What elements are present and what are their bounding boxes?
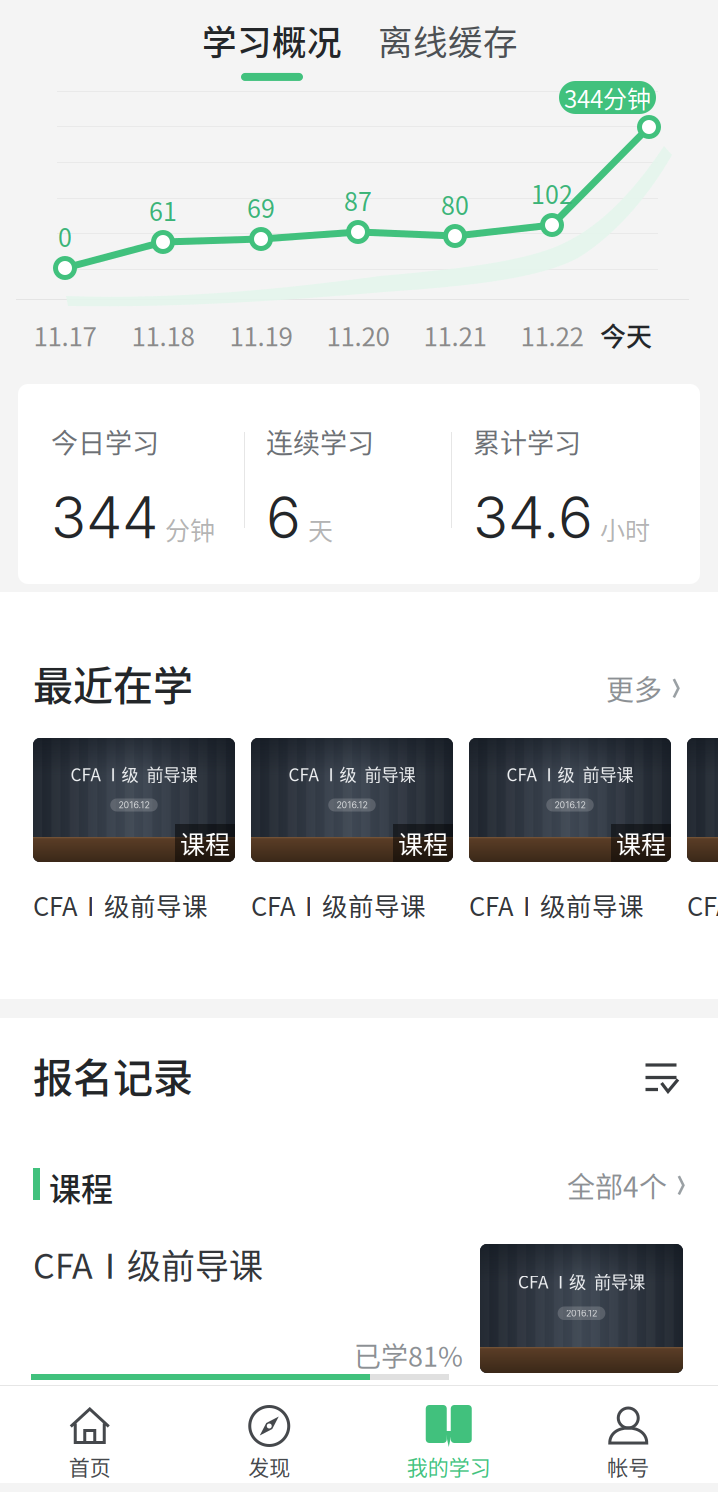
staticText: 87 <box>344 182 372 218</box>
staticText: 课程 <box>49 1164 113 1210</box>
staticText: 我的学习 <box>407 1451 491 1481</box>
staticText: 0 <box>58 218 72 254</box>
staticText: CFA Ⅰ级 前导课 <box>70 761 197 786</box>
staticText: 分钟 <box>165 511 215 547</box>
button[interactable]: CFA Ⅰ级 前导课 <box>469 738 671 910</box>
button[interactable]: 发现 <box>179 1386 359 1483</box>
staticText: 61 <box>149 192 177 228</box>
staticText: 69 <box>247 189 275 225</box>
button[interactable]: CFAⅠ级前导课 <box>0 1222 718 1372</box>
button[interactable]: 筛选 <box>644 1063 680 1093</box>
staticText: CFA Ⅰ级 前导课 <box>506 761 633 786</box>
staticText: CFA Ⅰ级 前导课 <box>518 1269 645 1294</box>
staticText: 6 <box>266 482 301 552</box>
staticText: CFAⅠ级前导课 <box>251 886 426 923</box>
button[interactable]: CFA Ⅰ级 前导课 <box>33 738 235 910</box>
staticText: 11.20 <box>326 316 389 354</box>
staticText: 2016.12 <box>566 1308 597 1319</box>
staticText: 今天 <box>600 316 652 354</box>
staticText: 天 <box>308 511 333 547</box>
button[interactable]: 我的学习 <box>359 1386 538 1483</box>
staticText: 课程 <box>616 825 666 861</box>
staticText: 首页 <box>69 1451 111 1481</box>
staticText: CFAⅠ级前导课 <box>469 886 644 923</box>
staticText: 11.19 <box>229 316 292 354</box>
button[interactable]: 学习概况 <box>192 15 352 85</box>
button[interactable]: CFA Ⅰ级 前导课 <box>251 738 453 910</box>
staticText: 全部4个 <box>567 1165 667 1205</box>
staticText: 帐号 <box>607 1451 649 1481</box>
staticText: 11.18 <box>131 316 194 354</box>
staticText: 发现 <box>248 1451 290 1481</box>
staticText: 更多 <box>606 668 662 708</box>
staticText: 累计学习 <box>473 422 581 461</box>
staticText: 小时 <box>600 511 650 547</box>
staticText: 离线缓存 <box>378 15 518 65</box>
staticText: 课程 <box>398 825 448 861</box>
button[interactable]: 全部4个 <box>567 1165 686 1189</box>
button[interactable]: 首页 <box>0 1386 179 1483</box>
button[interactable]: 更多 <box>606 668 681 692</box>
staticText: 11.22 <box>520 316 583 354</box>
button[interactable]: 帐号 <box>538 1386 718 1483</box>
staticText: 2016.12 <box>118 800 149 810</box>
staticText: 2016.12 <box>336 800 367 810</box>
staticText: 今日学习 <box>51 422 159 461</box>
staticText: 报名记录 <box>33 1046 193 1104</box>
button[interactable]: CFA Ⅰ级 前导课 <box>687 738 718 910</box>
staticText: 2016.12 <box>554 800 585 810</box>
staticText: 80 <box>441 186 469 222</box>
staticText: 连续学习 <box>266 422 374 461</box>
staticText: CFAⅠ级前导课 <box>33 886 208 923</box>
button[interactable]: 离线缓存 <box>368 15 528 85</box>
staticText: 102 <box>531 175 573 211</box>
staticText: 34.6 <box>473 482 593 552</box>
staticText: 344分钟 <box>564 80 651 115</box>
staticText: 最近在学 <box>33 654 193 712</box>
staticText: 11.17 <box>33 316 96 354</box>
staticText: 课程 <box>180 825 230 861</box>
staticText: 学习概况 <box>202 15 342 65</box>
staticText: 11.21 <box>423 316 486 354</box>
staticText: CFAⅠ级前导课 <box>687 886 718 923</box>
staticText: CFA Ⅰ级 前导课 <box>288 761 415 786</box>
staticText: CFAⅠ级前导课 <box>33 1239 263 1289</box>
staticText: 344 <box>51 482 158 552</box>
staticText: 已学81% <box>354 1335 463 1375</box>
